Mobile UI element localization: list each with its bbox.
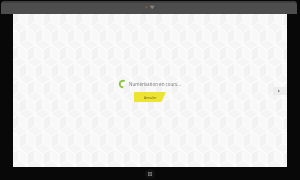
- button[interactable]: Home: [145, 169, 155, 179]
- staticText: Numérisation en cours...: [129, 81, 181, 87]
- button[interactable]: Open side panel: [273, 87, 287, 95]
- staticText: Annuler: [144, 95, 157, 100]
- button[interactable]: Annuler: [134, 92, 166, 102]
